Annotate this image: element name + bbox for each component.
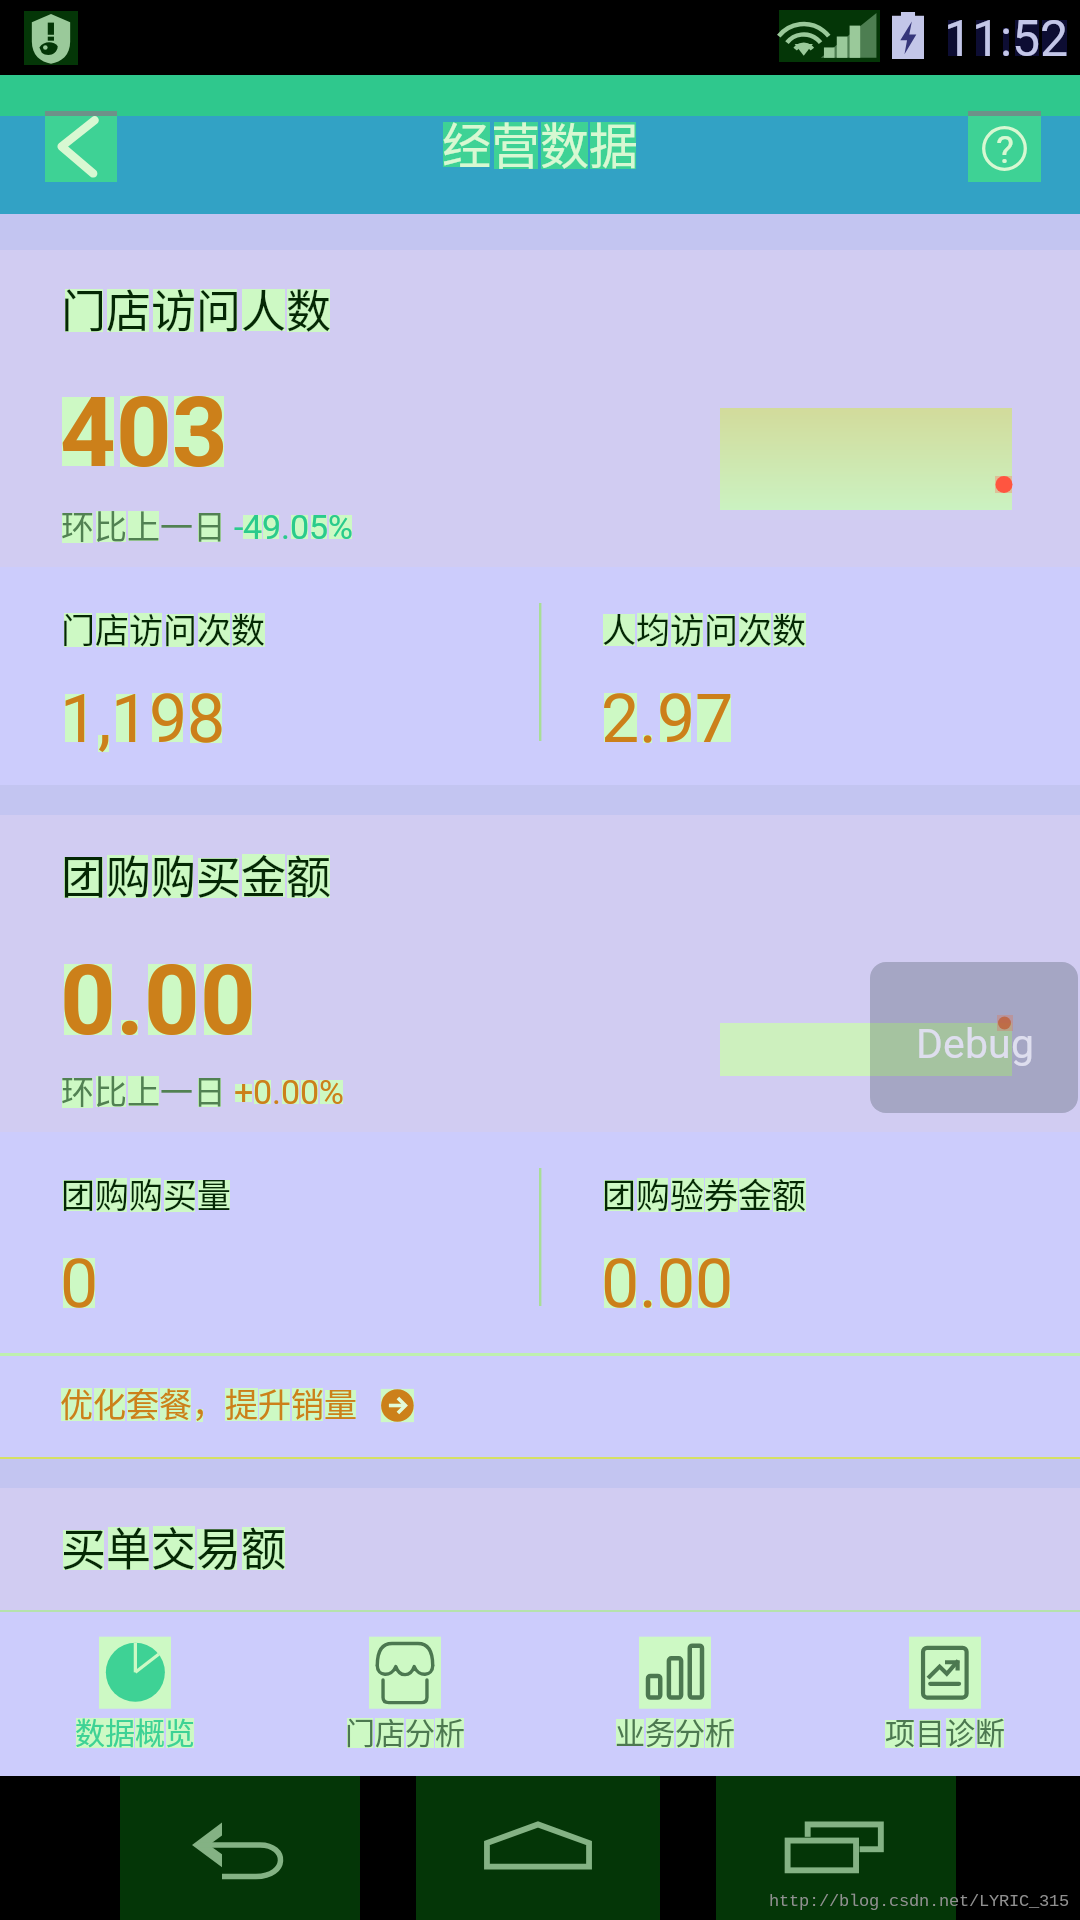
button[interactable]: Back xyxy=(120,1776,360,1920)
button[interactable] xyxy=(0,1356,1080,1457)
button[interactable]: Home xyxy=(416,1776,660,1920)
button[interactable]: Help xyxy=(968,111,1041,182)
button[interactable]: Back xyxy=(45,111,117,182)
button[interactable] xyxy=(810,1612,1080,1776)
button[interactable] xyxy=(540,1612,810,1776)
button[interactable]: Recents xyxy=(716,1776,956,1920)
button[interactable] xyxy=(270,1612,540,1776)
button[interactable] xyxy=(0,1612,270,1776)
